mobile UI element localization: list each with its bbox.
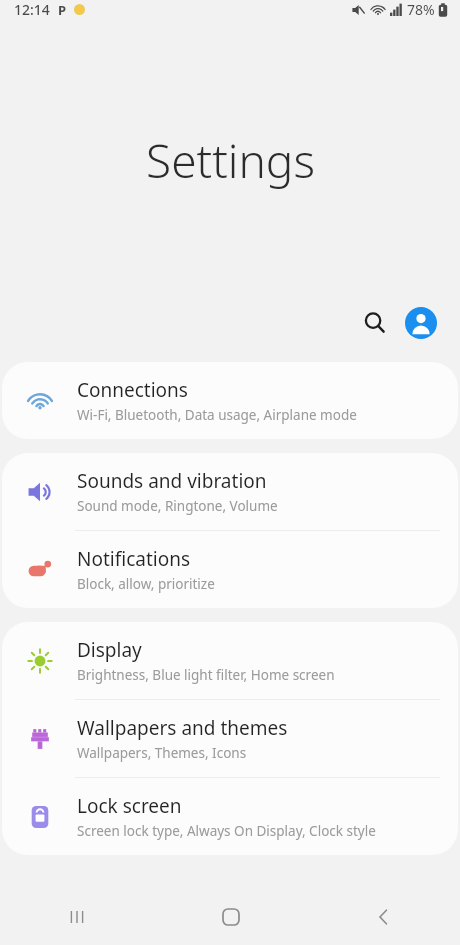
- staticText: Display: [77, 637, 142, 663]
- staticText: Notifications: [77, 546, 191, 572]
- staticText: Sound mode, Ringtone, Volume: [77, 497, 278, 515]
- staticText: Sounds and vibration: [77, 468, 267, 494]
- staticText: Lock screen: [77, 793, 182, 819]
- button[interactable]: Display: [2, 622, 458, 699]
- button[interactable]: Back: [307, 889, 460, 945]
- button[interactable]: Recents: [0, 889, 154, 945]
- button[interactable]: Sounds and vibration: [2, 453, 458, 530]
- button[interactable]: Wallpapers and themes: [2, 700, 458, 777]
- button[interactable]: Lock screen: [2, 778, 458, 855]
- staticText: Brightness, Blue light filter, Home scre…: [77, 666, 335, 684]
- staticText: 78%: [407, 0, 435, 19]
- staticText: Wallpapers, Themes, Icons: [77, 744, 247, 762]
- button[interactable]: Notifications: [2, 531, 458, 608]
- staticText: 12:14: [14, 0, 50, 19]
- button[interactable]: Connections: [2, 362, 458, 439]
- staticText: Settings: [146, 129, 315, 192]
- staticText: Block, allow, prioritize: [77, 575, 215, 593]
- staticText: Screen lock type, Always On Display, Clo…: [77, 822, 376, 840]
- button[interactable]: Account: [398, 300, 444, 346]
- staticText: Wi-Fi, Bluetooth, Data usage, Airplane m…: [77, 406, 357, 424]
- staticText: P: [58, 1, 67, 19]
- staticText: Connections: [77, 377, 188, 403]
- button[interactable]: Search: [352, 300, 398, 346]
- staticText: Wallpapers and themes: [77, 715, 288, 741]
- button[interactable]: Home: [154, 889, 307, 945]
